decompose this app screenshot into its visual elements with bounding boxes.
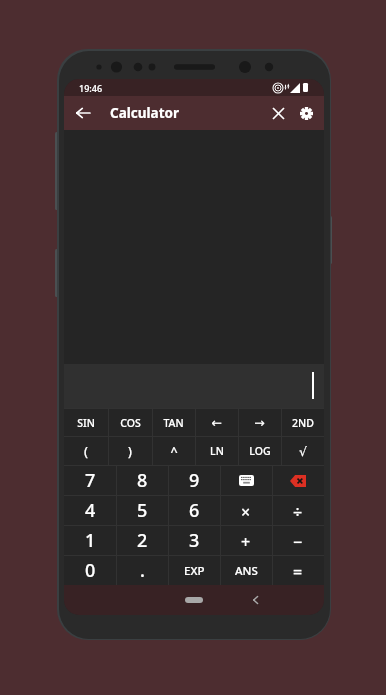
button[interactable]: LOG (238, 437, 281, 465)
button[interactable] (220, 466, 272, 495)
staticText: SIN (77, 416, 95, 430)
staticText: 19:46 (79, 82, 103, 94)
button[interactable]: × (220, 496, 272, 525)
staticText: TAN (163, 416, 184, 430)
button[interactable]: 8 (116, 466, 168, 495)
button[interactable]: COS (108, 409, 152, 436)
staticText: × (241, 501, 251, 523)
button[interactable]: ← (195, 409, 238, 436)
button[interactable]: 1 (64, 526, 116, 555)
button[interactable]: LN (195, 437, 238, 465)
staticText: ) (128, 443, 132, 460)
staticText: 0 (85, 558, 96, 583)
button[interactable]: ^ (152, 437, 195, 465)
button[interactable]: 2 (116, 526, 168, 555)
button[interactable]: . (116, 556, 168, 585)
button[interactable]: SIN (64, 409, 108, 436)
staticText: 7 (85, 468, 96, 493)
staticText: − (293, 531, 303, 553)
staticText: LN (210, 444, 224, 458)
staticText: = (293, 561, 303, 583)
button[interactable]: Back (244, 589, 266, 611)
button[interactable]: → (238, 409, 281, 436)
button[interactable]: ÷ (272, 496, 324, 525)
staticText: COS (120, 416, 141, 430)
staticText: ^ (170, 443, 178, 460)
staticText: 2 (137, 528, 148, 553)
staticText: ( (84, 443, 88, 460)
staticText: + (241, 531, 251, 553)
staticText: √ (299, 444, 307, 459)
button[interactable]: Settings (292, 99, 320, 127)
staticText: 1 (85, 528, 96, 553)
button[interactable]: 6 (168, 496, 220, 525)
staticText: LOG (249, 444, 271, 458)
staticText: 3 (189, 528, 200, 553)
staticText: 8 (137, 468, 148, 493)
button[interactable]: ( (64, 437, 108, 465)
button[interactable] (272, 466, 324, 495)
button[interactable]: Close (264, 99, 292, 127)
button[interactable]: TAN (152, 409, 195, 436)
staticText: 4 (85, 498, 96, 523)
staticText: ÷ (293, 501, 303, 523)
staticText: EXP (184, 563, 205, 579)
button[interactable]: Home (185, 597, 203, 603)
button[interactable]: − (272, 526, 324, 555)
staticText: 6 (189, 498, 200, 523)
staticText: Calculator (110, 104, 179, 122)
staticText: 5 (137, 498, 148, 523)
staticText: ← (211, 415, 222, 430)
button[interactable]: 0 (64, 556, 116, 585)
button[interactable]: + (220, 526, 272, 555)
staticText: 9 (189, 468, 200, 493)
button[interactable]: Back (69, 99, 97, 127)
button[interactable]: 9 (168, 466, 220, 495)
button[interactable]: 3 (168, 526, 220, 555)
staticText: . (140, 558, 145, 583)
button[interactable]: 4 (64, 496, 116, 525)
button[interactable]: = (272, 556, 324, 585)
button[interactable]: ) (108, 437, 152, 465)
button[interactable]: 2ND (281, 409, 324, 436)
button[interactable]: ANS (220, 556, 272, 585)
button[interactable]: √ (281, 437, 324, 465)
button[interactable]: 5 (116, 496, 168, 525)
staticText: 2ND (292, 416, 314, 430)
button[interactable]: EXP (168, 556, 220, 585)
button[interactable]: 7 (64, 466, 116, 495)
staticText: ANS (235, 563, 258, 579)
staticText: → (254, 415, 265, 430)
